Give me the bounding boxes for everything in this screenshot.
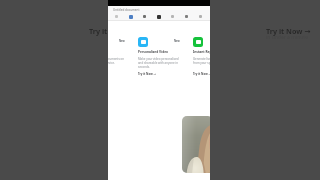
staticText: Instant Report [193, 50, 210, 54]
button[interactable]: Insert [155, 13, 162, 20]
staticText: Try it Now → [193, 72, 210, 76]
button[interactable]: Edit [141, 13, 148, 20]
button[interactable]: New [108, 32, 129, 79]
button[interactable]: Comment [183, 13, 190, 20]
staticText: Generate live reports directly from your… [193, 57, 210, 65]
button[interactable]: New [134, 32, 184, 79]
staticText: Create and edit documents on the go from… [108, 57, 125, 65]
button[interactable]: Share [197, 13, 204, 20]
staticText: Personalized Video [138, 50, 169, 54]
staticText: Try it Now → [266, 26, 311, 36]
staticText: Make your video personalized and shareab… [138, 57, 180, 69]
button[interactable]: Format [169, 13, 176, 20]
button[interactable]: Home [127, 13, 134, 20]
staticText: Try it Now → [138, 72, 156, 76]
button[interactable]: Menu [113, 13, 120, 20]
staticText: Untitled document [113, 8, 140, 12]
staticText: New [119, 39, 125, 43]
staticText: Try it Now → [89, 26, 134, 36]
button[interactable]: New [189, 32, 210, 79]
staticText: New [174, 39, 180, 43]
